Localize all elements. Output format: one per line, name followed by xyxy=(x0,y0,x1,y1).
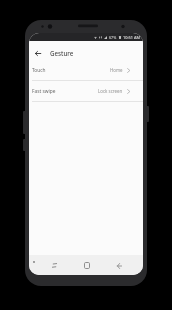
staticText: Lock screen xyxy=(98,88,123,94)
button[interactable]: Touch xyxy=(29,60,143,80)
button[interactable] xyxy=(48,259,60,271)
button[interactable] xyxy=(33,48,43,58)
staticText: 67% xyxy=(109,35,117,40)
button[interactable] xyxy=(80,259,93,272)
staticText: Touch xyxy=(32,67,46,74)
staticText: Home xyxy=(110,67,123,73)
button[interactable]: Fast swipe xyxy=(29,81,143,101)
staticText: 10:51 AM xyxy=(123,35,140,40)
staticText: Fast swipe xyxy=(32,88,56,95)
staticText: Gesture xyxy=(50,49,74,57)
button[interactable] xyxy=(113,260,125,272)
